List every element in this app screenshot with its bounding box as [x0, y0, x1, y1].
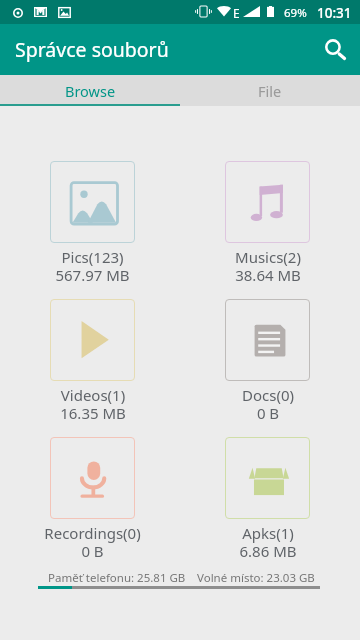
button[interactable]: Docs(0) 0 B	[219, 299, 316, 423]
staticText: Volné místo: 23.03 GB	[197, 570, 315, 586]
button[interactable]: Recordings(0) 0 B	[38, 437, 147, 561]
button[interactable]: Search	[315, 29, 355, 69]
staticText: Musics(2) 38.64 MB	[235, 247, 301, 285]
staticText: Docs(0) 0 B	[242, 385, 294, 423]
staticText: Pics(123) 567.97 MB	[55, 247, 130, 285]
staticText: File	[258, 81, 282, 101]
staticText: Správce souborů	[15, 36, 169, 63]
staticText: 69%	[284, 5, 307, 21]
button[interactable]: Pics(123) 567.97 MB	[44, 161, 141, 285]
staticText: Recordings(0) 0 B	[44, 523, 141, 561]
button[interactable]: Browse	[0, 75, 180, 106]
button[interactable]: Musics(2) 38.64 MB	[219, 161, 316, 285]
staticText: Videos(1) 16.35 MB	[60, 385, 126, 423]
button[interactable]: Apks(1) 6.86 MB	[219, 437, 316, 561]
staticText: E	[233, 5, 240, 21]
button[interactable]: Videos(1) 16.35 MB	[44, 299, 141, 423]
staticText: 10:31	[317, 4, 352, 22]
staticText: Browse	[65, 81, 116, 101]
staticText: Apks(1) 6.86 MB	[239, 523, 297, 561]
staticText: Paměť telefonu: 25.81 GB	[48, 570, 186, 586]
button[interactable]: File	[180, 75, 360, 106]
